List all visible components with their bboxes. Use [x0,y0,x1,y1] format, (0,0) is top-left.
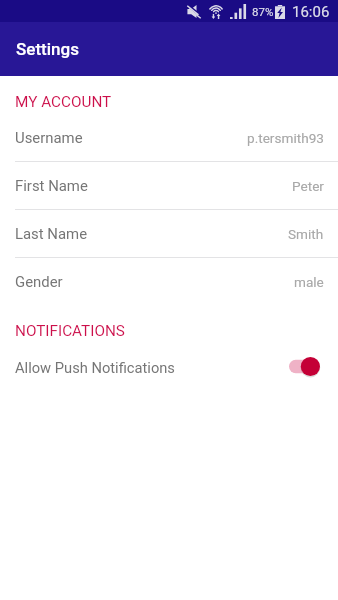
staticText: NOTIFICATIONS [15,322,125,340]
staticText: male [294,274,324,290]
other: Sound muted [187,5,201,18]
button[interactable]: Gender [0,258,338,305]
other: Battery charging 87 percent [275,5,285,19]
other: Mobile signal strength [230,4,246,19]
button[interactable]: First Name [0,162,338,210]
staticText: Peter [292,178,324,194]
staticText: Smith [288,226,324,242]
staticText: Last Name [15,225,88,242]
staticText: 87% [252,5,274,18]
staticText: First Name [15,177,88,194]
button[interactable]: Toggle push notifications, on [289,356,320,377]
staticText: Settings [16,39,79,59]
other: Wi-Fi connected [208,4,224,19]
staticText: 16:06 [292,3,330,21]
button[interactable]: Last Name [0,210,338,258]
staticText: Allow Push Notifications [15,359,175,376]
staticText: p.tersmith93 [247,130,324,146]
staticText: Username [15,129,83,146]
button[interactable]: Username [0,114,338,162]
staticText: MY ACCOUNT [15,93,112,111]
staticText: Gender [15,273,63,290]
button[interactable]: Allow Push Notifications [0,344,338,391]
